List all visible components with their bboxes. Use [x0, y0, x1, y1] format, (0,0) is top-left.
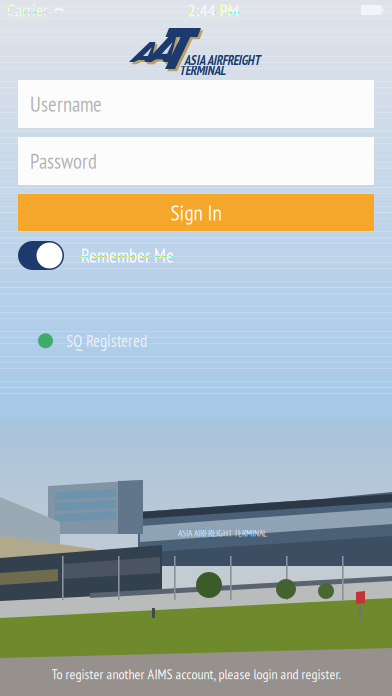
staticText: SQ Registered [66, 330, 147, 352]
button[interactable]: Username [18, 80, 374, 128]
staticText: 2:44 PM [187, 0, 239, 21]
button[interactable]: To register another AIMS account, please… [0, 665, 392, 696]
staticText: Username [30, 91, 102, 117]
button[interactable]: Sign In [18, 194, 374, 231]
staticText: Password [30, 148, 97, 174]
staticText: To register another AIMS account, please… [51, 665, 340, 683]
staticText: ASIA AIRFREIGHT [184, 52, 260, 68]
staticText: Remember Me [81, 243, 174, 268]
staticText: ASIA AIRFREIGHT TERMINAL [178, 527, 267, 539]
button[interactable]: Password [18, 137, 374, 185]
staticText: TERMINAL [179, 62, 225, 78]
staticText: Carrier [7, 0, 48, 21]
staticText: Sign In [170, 199, 221, 226]
button[interactable] [18, 241, 64, 270]
